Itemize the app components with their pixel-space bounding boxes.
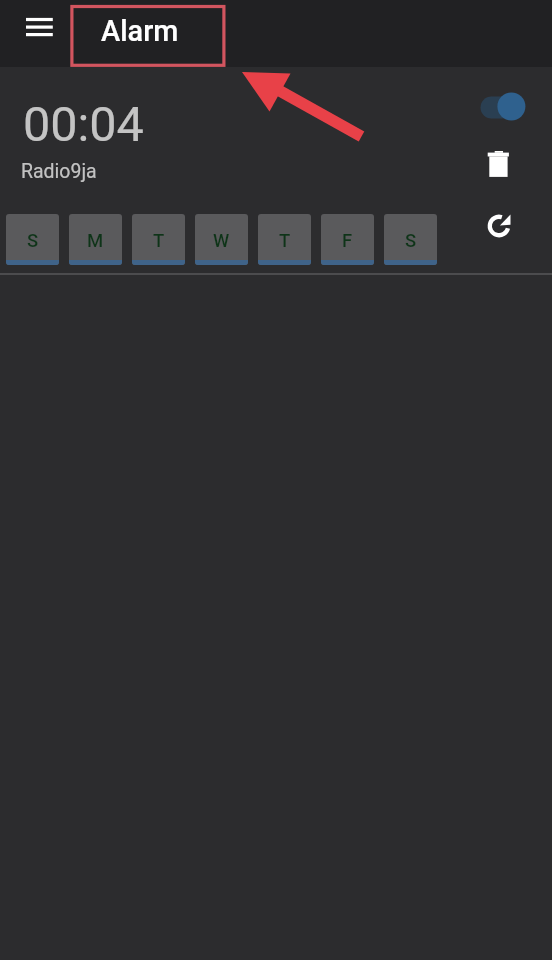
button[interactable]: Saturday: [384, 214, 437, 265]
staticText: F: [342, 230, 353, 252]
button[interactable]: Friday: [321, 214, 374, 265]
staticText: S: [405, 230, 417, 252]
button[interactable]: Tuesday: [132, 214, 185, 265]
button[interactable]: Sunday: [6, 214, 59, 265]
button[interactable]: Wednesday: [195, 214, 248, 265]
button[interactable]: Monday: [69, 214, 122, 265]
button[interactable]: Open navigation menu: [14, 7, 66, 59]
button[interactable]: 00:04: [0, 67, 552, 274]
staticText: 00:04: [23, 96, 144, 153]
staticText: T: [279, 230, 291, 252]
staticText: Radio9ja: [21, 160, 97, 183]
button[interactable]: Thursday: [258, 214, 311, 265]
staticText: M: [87, 230, 104, 252]
staticText: T: [153, 230, 165, 252]
staticText: S: [27, 230, 39, 252]
staticText: Alarm: [101, 14, 179, 48]
button[interactable]: Alarm on/off toggle: [472, 87, 536, 127]
staticText: W: [213, 230, 230, 252]
button[interactable]: Delete alarm: [476, 142, 520, 186]
button[interactable]: Reset alarm: [477, 204, 521, 248]
